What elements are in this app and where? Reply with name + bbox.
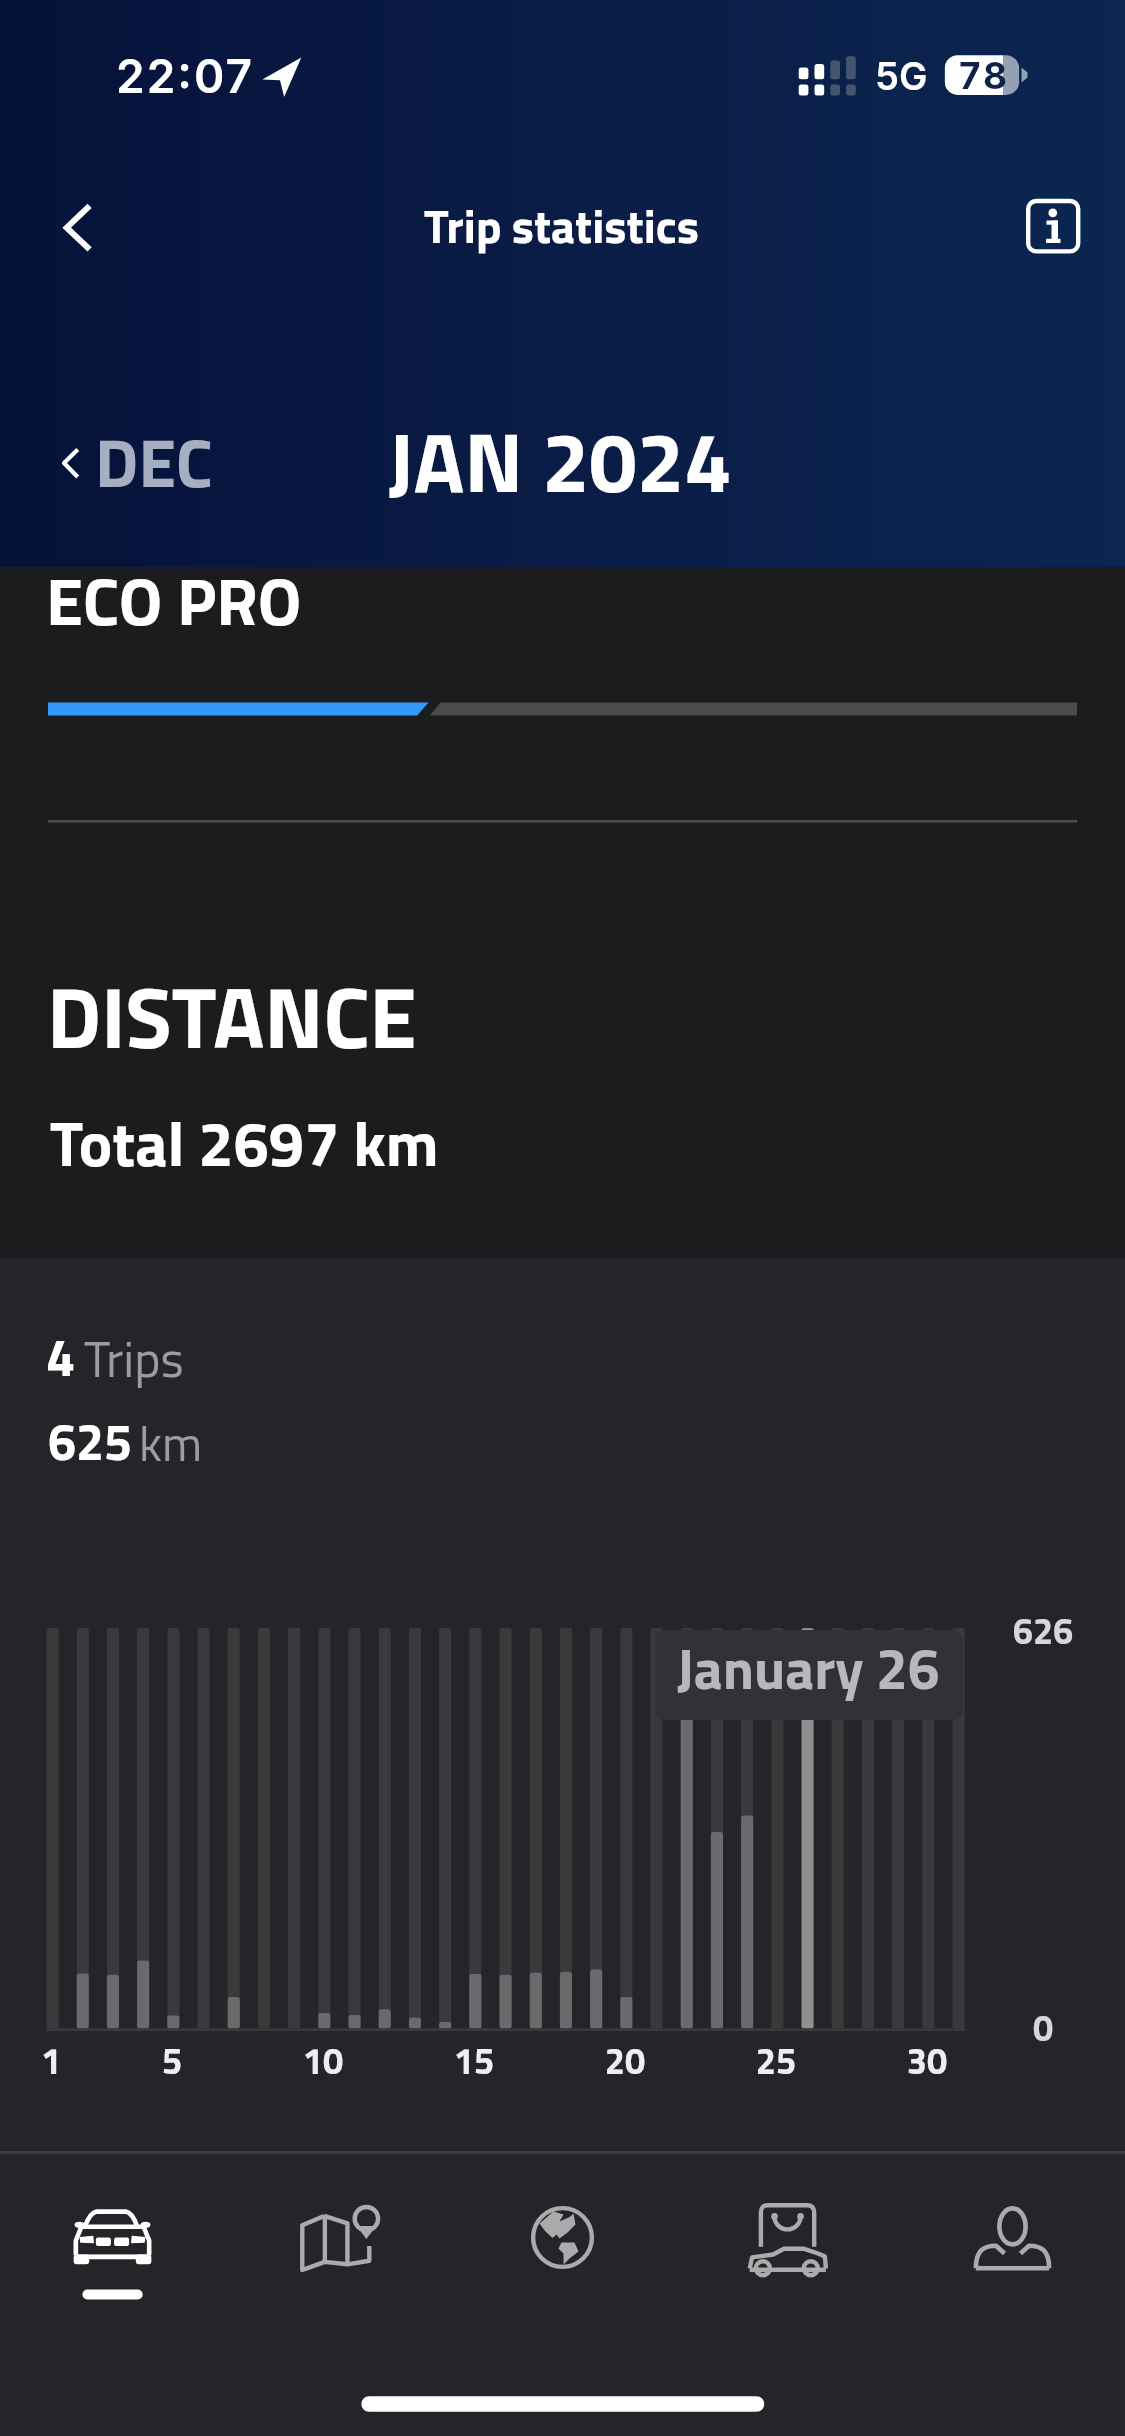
staticText: Trip statistics (424, 190, 699, 261)
staticText: 625 (48, 1403, 132, 1479)
button[interactable]: January 26 detail (655, 1630, 963, 1720)
button[interactable]: Information (1010, 184, 1098, 270)
staticText: DEC (95, 410, 213, 513)
staticText: 78 (959, 53, 1011, 98)
staticText: 626 (973, 1603, 1113, 1658)
staticText: 4 (46, 1317, 76, 1396)
staticText: 0 (973, 2000, 1113, 2055)
button[interactable]: Previous month, December (48, 424, 224, 502)
button[interactable]: Discover (450, 2154, 675, 2354)
staticText: Total 2697 km (50, 1095, 439, 1191)
staticText: 5 (112, 2033, 232, 2088)
staticText: ECO PRO (46, 549, 302, 651)
button[interactable]: Shop (675, 2154, 900, 2354)
staticText: DISTANCE (47, 952, 417, 1081)
staticText: 15 (414, 2033, 534, 2088)
staticText: January 26 (654, 1625, 962, 1711)
staticText: 30 (867, 2033, 987, 2088)
button[interactable]: Vehicle (0, 2154, 225, 2354)
staticText: Trips (84, 1320, 184, 1396)
staticText: km (139, 1407, 203, 1480)
staticText: 1 (0, 2033, 111, 2088)
staticText: JAN 2024 (388, 396, 732, 525)
button[interactable]: Profile (900, 2154, 1125, 2354)
staticText: 22:07 (116, 48, 254, 104)
button[interactable]: Back (44, 182, 140, 274)
button[interactable]: Map (225, 2154, 450, 2354)
staticText: 25 (716, 2033, 836, 2088)
staticText: 20 (565, 2033, 685, 2088)
staticText: 10 (263, 2033, 383, 2088)
staticText: 5G (875, 53, 928, 99)
